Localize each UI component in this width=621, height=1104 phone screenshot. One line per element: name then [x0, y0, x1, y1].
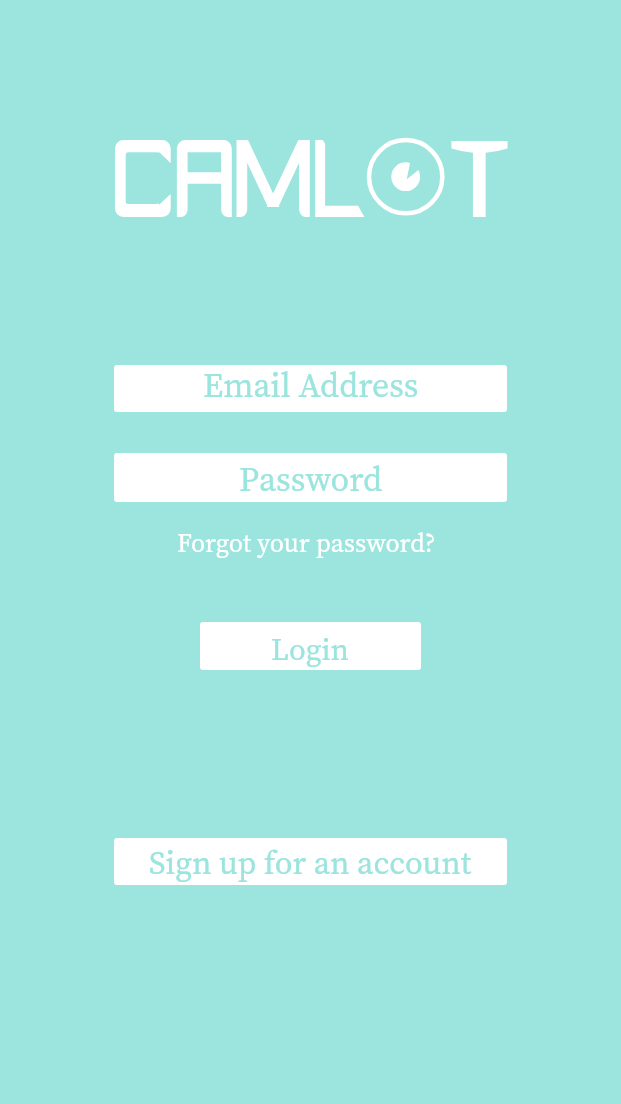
staticText: Forgot your password?: [177, 525, 436, 560]
staticText: Password: [239, 456, 383, 502]
button[interactable]: Sign up for an account: [114, 838, 507, 885]
staticText: Email Address: [203, 365, 419, 408]
button[interactable]: Forgot your password?: [150, 524, 463, 560]
staticText: Login: [271, 629, 350, 670]
staticText: Sign up for an account: [149, 841, 472, 885]
button[interactable]: Password: [114, 453, 507, 502]
other: CAMLOT: [115, 140, 508, 217]
button[interactable]: Email Address: [114, 365, 507, 412]
button[interactable]: Login: [200, 622, 421, 670]
